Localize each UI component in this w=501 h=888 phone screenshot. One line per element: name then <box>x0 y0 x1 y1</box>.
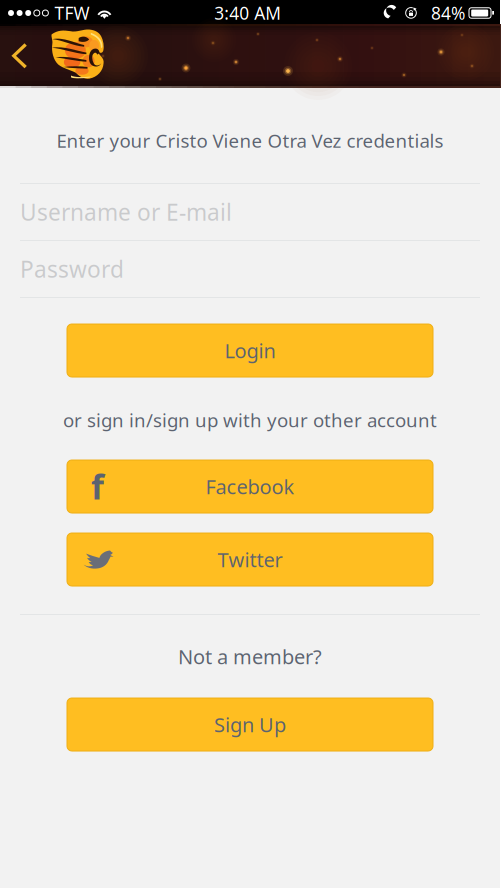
staticText: 84% <box>431 1 465 24</box>
staticText: Username or E-mail <box>20 197 232 227</box>
staticText: TFW <box>54 1 89 24</box>
button[interactable]: Sign Up <box>0 698 500 751</box>
button[interactable]: f <box>0 460 500 513</box>
staticText: Login <box>224 337 275 364</box>
button[interactable]: Login <box>0 324 500 377</box>
staticText: Enter your Cristo Viene Otra Vez credent… <box>56 128 443 153</box>
staticText: Not a member? <box>178 643 322 670</box>
staticText: Facebook <box>205 473 294 500</box>
staticText: Twitter <box>217 546 282 573</box>
staticText: Password <box>20 254 124 284</box>
staticText: 3:40 AM <box>214 1 281 24</box>
button[interactable]: Back <box>0 26 49 86</box>
button[interactable]: Twitter <box>0 533 500 586</box>
staticText: f <box>91 464 104 509</box>
staticText: or sign in/sign up with your other accou… <box>63 408 437 432</box>
staticText: Sign Up <box>214 711 286 738</box>
